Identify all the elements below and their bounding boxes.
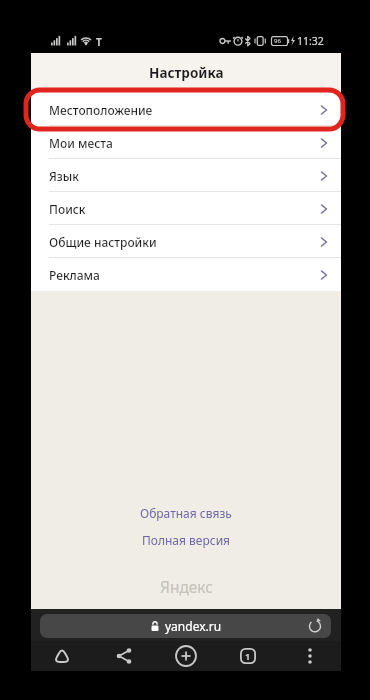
staticText: Язык: [49, 168, 79, 184]
staticText: Яндекс: [160, 576, 213, 597]
button[interactable]: Язык: [31, 159, 341, 192]
button[interactable]: Поиск: [31, 192, 341, 225]
button[interactable]: [93, 641, 155, 671]
staticText: Местоположение: [49, 102, 153, 118]
button[interactable]: [279, 641, 341, 671]
staticText: Мои места: [49, 135, 113, 151]
button[interactable]: 1: [217, 641, 279, 671]
button[interactable]: [155, 641, 217, 671]
staticText: 96: [274, 37, 281, 45]
button[interactable]: Общие настройки: [31, 225, 341, 258]
button[interactable]: Обратная связь: [31, 500, 341, 526]
button[interactable]: Реклама: [31, 258, 341, 291]
staticText: Обратная связь: [140, 505, 232, 521]
button[interactable]: yandex.ru: [40, 614, 331, 638]
staticText: Поиск: [49, 201, 86, 217]
button[interactable]: Местоположение: [31, 93, 341, 126]
staticText: 1: [245, 650, 251, 662]
staticText: T: [96, 35, 102, 49]
staticText: yandex.ru: [165, 618, 222, 634]
button[interactable]: Полная версия: [31, 527, 341, 553]
button[interactable]: [303, 614, 327, 638]
button[interactable]: [31, 641, 93, 671]
staticText: 11:32: [297, 34, 324, 48]
staticText: Реклама: [49, 267, 100, 283]
staticText: Настройка: [149, 64, 224, 82]
staticText: Общие настройки: [49, 234, 157, 250]
button[interactable]: Мои места: [31, 126, 341, 159]
staticText: Полная версия: [142, 532, 231, 548]
